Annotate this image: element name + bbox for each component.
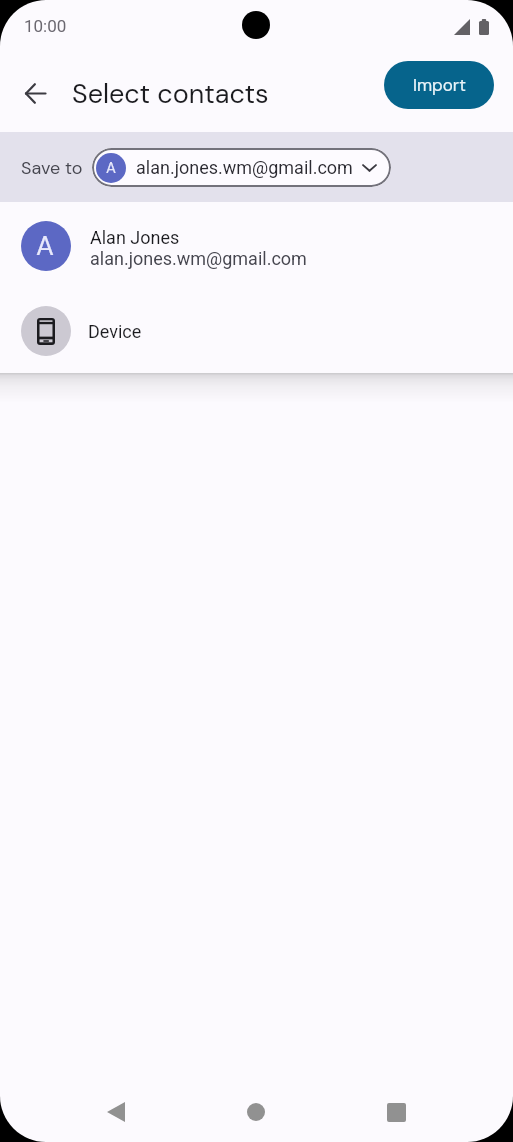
button[interactable]: Device [0,290,513,372]
staticText: A [36,228,54,263]
staticText: Alan Jones [90,227,180,248]
staticText: Save to [21,156,83,179]
staticText: Device [88,321,142,342]
button[interactable]: A [0,202,513,290]
button[interactable]: Back [94,1090,138,1134]
button[interactable]: Import [384,61,494,109]
button[interactable]: Home [234,1090,278,1134]
staticText: 10:00 [24,16,67,36]
staticText: alan.jones.wm@gmail.com [136,157,353,178]
button[interactable]: Recents [374,1090,418,1134]
button[interactable]: A [92,148,391,187]
button[interactable]: Back [11,69,59,117]
staticText: A [106,158,116,178]
staticText: alan.jones.wm@gmail.com [90,248,307,269]
staticText: Import [413,74,466,96]
staticText: Select contacts [72,76,269,111]
